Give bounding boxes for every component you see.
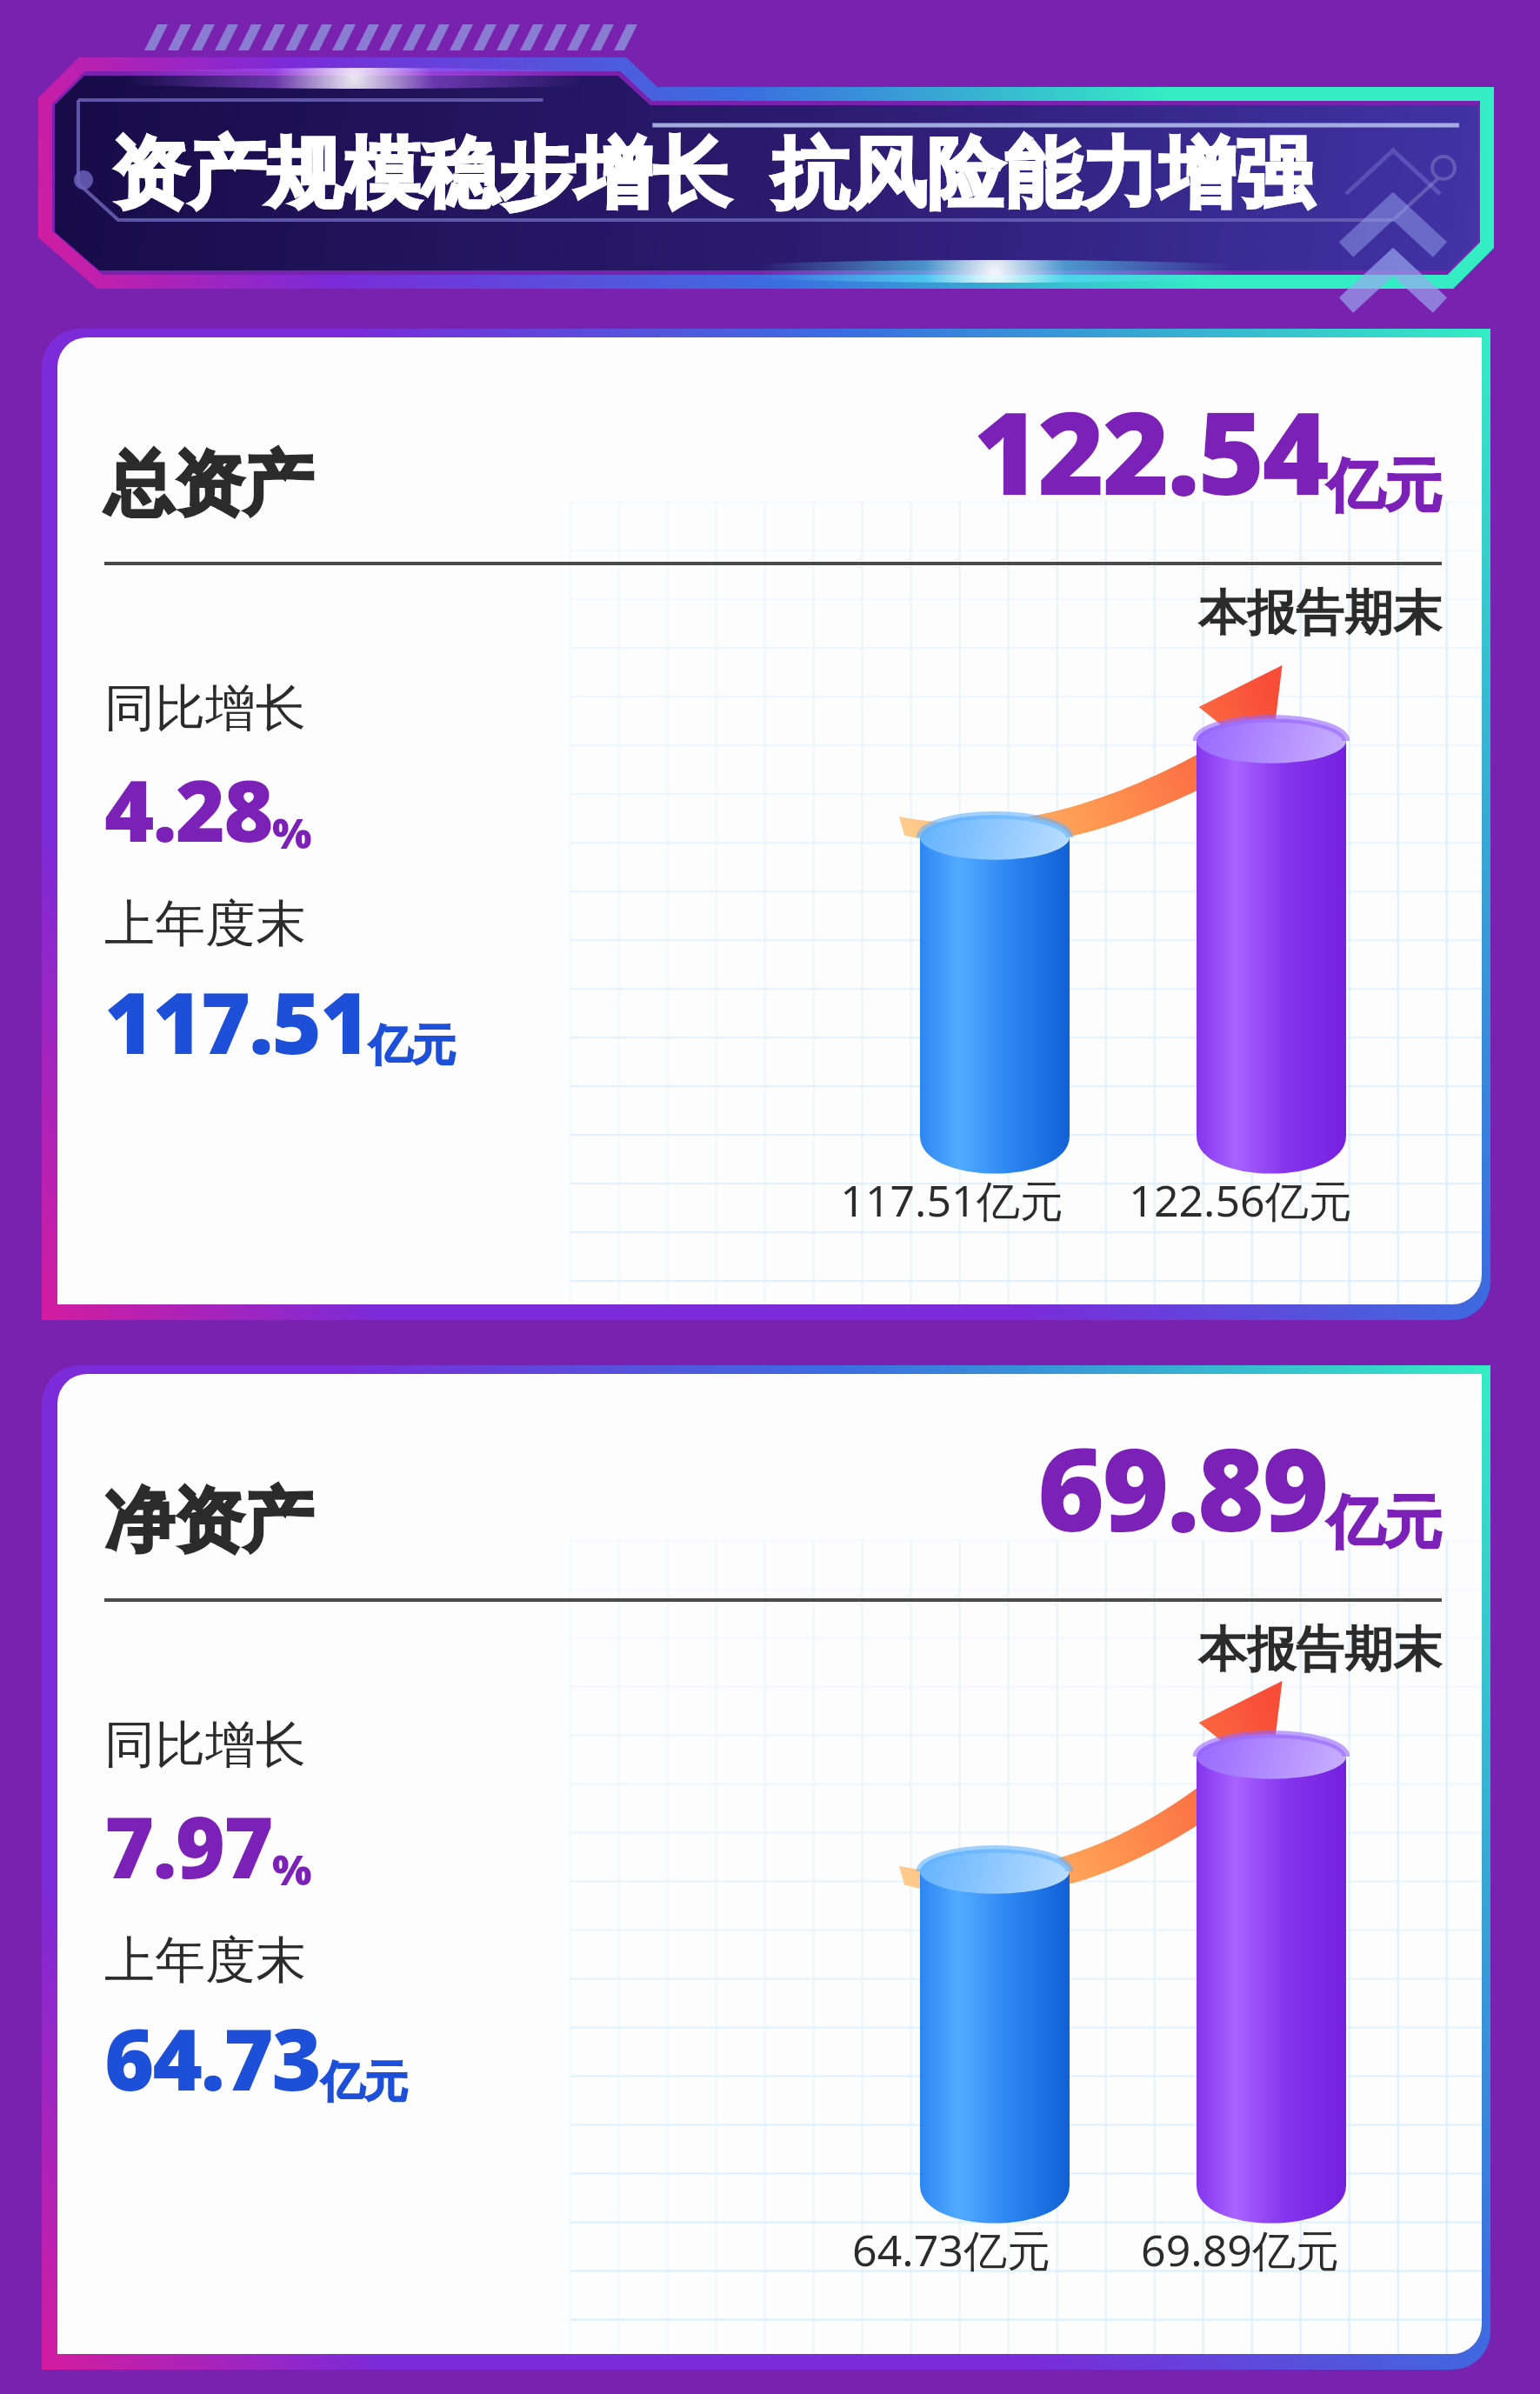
staticText: 本报告期末 bbox=[1198, 583, 1442, 644]
staticText: % bbox=[272, 1841, 312, 1897]
staticText: 122.56亿元 bbox=[1129, 1170, 1352, 1230]
staticText: 69.89 bbox=[1037, 1409, 1327, 1565]
button[interactable]: 净资产 bbox=[42, 1365, 1490, 2370]
staticText: 净资产 bbox=[104, 1477, 313, 1565]
button[interactable]: 资产规模稳步增长 抗风险能力增强 bbox=[33, 24, 1490, 299]
staticText: 64.73亿元 bbox=[852, 2220, 1050, 2279]
staticText: 117.51 bbox=[104, 963, 369, 1078]
staticText: 亿元 bbox=[369, 1018, 456, 1073]
staticText: 4.28 bbox=[104, 750, 272, 866]
staticText: 69.89亿元 bbox=[1141, 2220, 1339, 2279]
button[interactable]: 总资产 bbox=[42, 329, 1490, 1320]
staticText: 亿元 bbox=[1327, 1486, 1442, 1558]
staticText: 本报告期末 bbox=[1198, 1619, 1442, 1681]
staticText: 122.54 bbox=[973, 372, 1327, 529]
staticText: 上年度末 bbox=[104, 892, 306, 956]
staticText: 总资产 bbox=[104, 441, 313, 529]
staticText: 上年度末 bbox=[104, 1929, 306, 1992]
staticText: 117.51亿元 bbox=[840, 1170, 1063, 1230]
staticText: 同比增长 bbox=[104, 677, 306, 740]
staticText: 资产规模稳步增长 抗风险能力增强 bbox=[111, 118, 1314, 223]
staticText: 亿元 bbox=[321, 2055, 408, 2110]
staticText: 同比增长 bbox=[104, 1713, 306, 1777]
staticText: % bbox=[272, 804, 312, 861]
staticText: 7.97 bbox=[104, 1787, 272, 1903]
staticText: 亿元 bbox=[1327, 450, 1442, 522]
staticText: 64.73 bbox=[104, 1999, 321, 2115]
